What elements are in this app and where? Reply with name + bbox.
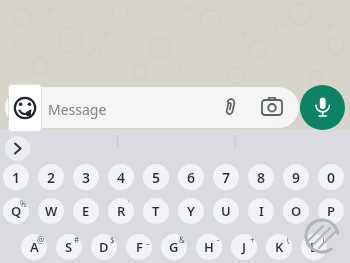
- staticText: -: [217, 234, 220, 245]
- staticText: K: [275, 238, 284, 256]
- staticText: $: [110, 234, 115, 245]
- button[interactable]: G: [161, 234, 187, 260]
- staticText: +: [250, 234, 255, 245]
- staticText: Q: [11, 202, 22, 220]
- staticText: Message: [48, 100, 107, 119]
- staticText: 1: [12, 168, 21, 187]
- button[interactable]: U: [213, 198, 239, 224]
- button[interactable]: L: [301, 234, 327, 260]
- staticText: F: [136, 238, 143, 256]
- staticText: J: [242, 238, 247, 256]
- button[interactable]: H: [196, 234, 222, 260]
- button[interactable]: 7: [213, 164, 239, 190]
- staticText: 6: [187, 168, 196, 187]
- staticText: 7: [222, 168, 231, 187]
- button[interactable]: K: [266, 234, 292, 260]
- button[interactable]: 5: [143, 164, 169, 190]
- staticText: 4: [117, 168, 126, 187]
- staticText: ): [322, 234, 325, 245]
- button[interactable]: Y: [178, 198, 204, 224]
- button[interactable]: 1: [3, 164, 29, 190]
- button[interactable]: [5, 87, 299, 128]
- button[interactable]: 2: [38, 164, 64, 190]
- staticText: `: [59, 198, 62, 209]
- button[interactable]: 8: [248, 164, 274, 190]
- staticText: _: [146, 234, 150, 245]
- staticText: E: [82, 202, 90, 220]
- button[interactable]: E: [73, 198, 99, 224]
- staticText: #: [74, 234, 80, 245]
- button[interactable]: J: [231, 234, 257, 260]
- staticText: R: [117, 202, 126, 220]
- staticText: O: [291, 202, 302, 220]
- staticText: A: [30, 238, 39, 256]
- button[interactable]: 6: [178, 164, 204, 190]
- button[interactable]: 4: [108, 164, 134, 190]
- staticText: L: [310, 238, 318, 256]
- staticText: Y: [187, 202, 195, 220]
- staticText: ': [165, 198, 167, 209]
- staticText: 0: [327, 168, 336, 187]
- staticText: ': [270, 198, 272, 209]
- button[interactable]: [8, 84, 42, 132]
- button[interactable]: W: [38, 198, 64, 224]
- button[interactable]: I: [248, 198, 274, 224]
- button[interactable]: Q: [3, 198, 29, 224]
- staticText: 5: [152, 168, 161, 187]
- staticText: 2: [47, 168, 56, 187]
- staticText: (: [287, 234, 290, 245]
- staticText: ': [235, 198, 237, 209]
- button[interactable]: R: [108, 198, 134, 224]
- button[interactable]: D: [91, 234, 117, 260]
- staticText: G: [169, 238, 179, 256]
- button[interactable]: 0: [318, 164, 344, 190]
- button[interactable]: 3: [73, 164, 99, 190]
- staticText: W: [45, 202, 58, 220]
- staticText: H: [204, 238, 214, 256]
- staticText: 3: [82, 168, 91, 187]
- staticText: U: [221, 202, 231, 220]
- staticText: ": [128, 198, 132, 209]
- staticText: I: [259, 202, 264, 220]
- staticText: S: [65, 238, 73, 256]
- staticText: ': [340, 198, 342, 209]
- staticText: ': [200, 198, 202, 209]
- staticText: P: [327, 202, 335, 220]
- staticText: 9: [292, 168, 301, 187]
- staticText: &: [179, 234, 185, 245]
- staticText: @: [37, 234, 45, 245]
- staticText: %: [20, 198, 27, 209]
- button[interactable]: [5, 136, 30, 161]
- button[interactable]: A: [21, 234, 47, 260]
- staticText: 8: [257, 168, 266, 187]
- staticText: D: [99, 238, 109, 256]
- staticText: ': [95, 198, 97, 209]
- button[interactable]: S: [56, 234, 82, 260]
- staticText: ': [305, 198, 307, 209]
- button[interactable]: 9: [283, 164, 309, 190]
- button[interactable]: O: [283, 198, 309, 224]
- button[interactable]: [300, 85, 345, 130]
- button[interactable]: T: [143, 198, 169, 224]
- staticText: T: [152, 202, 160, 220]
- button[interactable]: F: [126, 234, 152, 260]
- button[interactable]: P: [318, 198, 344, 224]
